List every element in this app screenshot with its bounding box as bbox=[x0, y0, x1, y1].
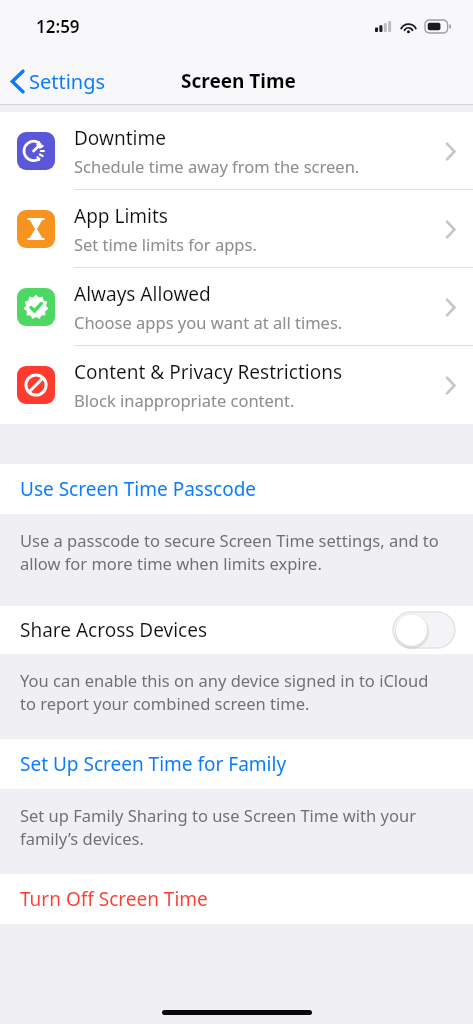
button[interactable]: Always Allowed bbox=[0, 268, 473, 346]
staticText: Schedule time away from the screen. bbox=[74, 155, 360, 177]
staticText: Turn Off Screen Time bbox=[20, 886, 208, 912]
button[interactable]: Downtime bbox=[0, 112, 473, 190]
button[interactable]: Content & Privacy Restrictions bbox=[0, 346, 473, 424]
staticText: Set time limits for apps. bbox=[74, 233, 257, 255]
button[interactable]: Settings bbox=[0, 63, 118, 100]
staticText: Settings bbox=[29, 68, 106, 95]
staticText: Choose apps you want at all times. bbox=[74, 311, 343, 333]
button[interactable]: Turn Off Screen Time bbox=[0, 874, 473, 924]
staticText: Block inappropriate content. bbox=[74, 389, 295, 411]
staticText: You can enable this on any device signed… bbox=[20, 669, 445, 715]
staticText: Set Up Screen Time for Family bbox=[20, 751, 287, 777]
staticText: Content & Privacy Restrictions bbox=[74, 359, 342, 385]
staticText: Downtime bbox=[74, 125, 166, 151]
staticText: Share Across Devices bbox=[20, 617, 208, 643]
staticText: Set up Family Sharing to use Screen Time… bbox=[20, 804, 445, 850]
staticText: Use a passcode to secure Screen Time set… bbox=[20, 529, 445, 575]
staticText: App Limits bbox=[74, 203, 168, 229]
staticText: Screen Time bbox=[181, 68, 296, 94]
button[interactable]: Share Across Devices toggle, off bbox=[393, 612, 455, 648]
button[interactable]: Use Screen Time Passcode bbox=[0, 464, 473, 514]
button[interactable]: App Limits bbox=[0, 190, 473, 268]
button[interactable]: Set Up Screen Time for Family bbox=[0, 739, 473, 789]
staticText: 12:59 bbox=[36, 15, 80, 38]
staticText: Always Allowed bbox=[74, 281, 211, 307]
staticText: Use Screen Time Passcode bbox=[20, 476, 257, 502]
button[interactable]: Share Across Devices bbox=[0, 606, 473, 654]
